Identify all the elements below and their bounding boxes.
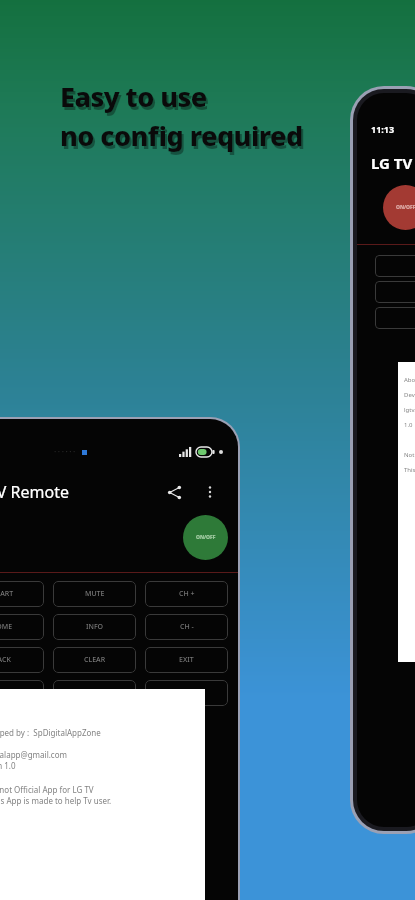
button[interactable] bbox=[53, 680, 136, 706]
staticText: This App bbox=[404, 466, 415, 474]
staticText: Not Offic bbox=[404, 451, 415, 459]
staticText: Easy to use bbox=[60, 78, 207, 115]
staticText: 1.0 bbox=[404, 421, 413, 429]
button[interactable]: INFO bbox=[53, 614, 136, 640]
staticText: LG TV bbox=[371, 153, 413, 173]
staticText: But This App is made to help Tv user. bbox=[0, 795, 112, 806]
staticText: ON/OFF bbox=[396, 204, 415, 211]
staticText: LG TV Remote bbox=[0, 481, 69, 503]
staticText: CH - bbox=[180, 622, 194, 632]
staticText: • • • • • • bbox=[54, 448, 76, 456]
button[interactable]: CLEAR bbox=[53, 647, 136, 673]
staticText: CLEAR bbox=[84, 655, 106, 665]
staticText: CH + bbox=[179, 589, 195, 599]
staticText: SMART bbox=[0, 589, 14, 599]
button[interactable]: EXIT bbox=[145, 647, 228, 673]
staticText: lgtvapp@ bbox=[404, 406, 415, 414]
button[interactable]: More options bbox=[196, 478, 224, 506]
staticText: spdigitalapp@gmail.com bbox=[0, 749, 67, 760]
staticText: HOME bbox=[0, 622, 13, 632]
staticText: Developed bbox=[404, 391, 415, 399]
button[interactable]: Share bbox=[160, 478, 188, 506]
staticText: 11:13 bbox=[371, 123, 395, 135]
button[interactable]: BACK bbox=[0, 647, 44, 673]
staticText: ON/OFF bbox=[196, 534, 216, 541]
button[interactable] bbox=[375, 255, 415, 277]
button[interactable]: ON/OFF bbox=[383, 185, 415, 230]
button[interactable] bbox=[375, 307, 415, 329]
staticText: EXIT bbox=[179, 655, 194, 665]
button[interactable]: CH + bbox=[145, 581, 228, 607]
staticText: INFO bbox=[86, 622, 104, 632]
staticText: About bbox=[404, 376, 415, 384]
button[interactable]: ON/OFF bbox=[183, 515, 228, 560]
staticText: Version 1.0 bbox=[0, 760, 16, 771]
staticText: Developed by : SpDigitalAppZone bbox=[0, 727, 101, 738]
button[interactable] bbox=[0, 680, 44, 706]
staticText: no config required bbox=[60, 117, 303, 154]
staticText: no config required bbox=[62, 120, 305, 157]
button[interactable]: MUTE bbox=[53, 581, 136, 607]
button[interactable] bbox=[145, 680, 228, 706]
staticText: MUTE bbox=[85, 589, 105, 599]
button[interactable]: HOME bbox=[0, 614, 44, 640]
staticText: Easy to use bbox=[62, 81, 209, 118]
staticText: BACK bbox=[0, 655, 11, 665]
button[interactable]: CH - bbox=[145, 614, 228, 640]
button[interactable]: SMART bbox=[0, 581, 44, 607]
staticText: This is not Official App for LG TV bbox=[0, 784, 94, 795]
button[interactable] bbox=[375, 281, 415, 303]
